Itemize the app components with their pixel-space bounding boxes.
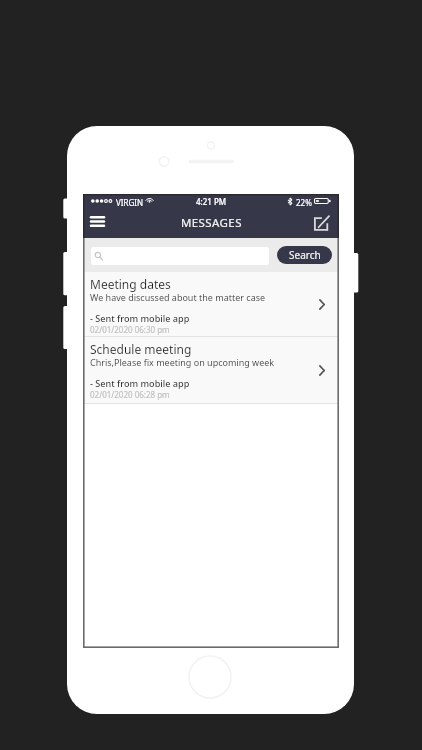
other: Open conversation [313, 337, 339, 403]
staticText: 4:21 PM [196, 196, 227, 207]
staticText: We have discussed about the matter case [90, 291, 266, 303]
button[interactable]: Compose new message [307, 208, 338, 238]
staticText: Chris,Please fix meeting on upcoming wee… [90, 356, 275, 368]
staticText: 02/01/2020 06:30 pm [90, 324, 170, 335]
staticText: VIRGIN [116, 197, 144, 208]
button[interactable]: Search field [91, 247, 269, 265]
button[interactable]: Schedule meeting [83, 337, 339, 404]
staticText: - Sent from mobile app [90, 312, 190, 324]
staticText: Schedule meeting [90, 341, 192, 357]
staticText: - Sent from mobile app [90, 377, 190, 389]
staticText: MESSAGES [181, 215, 242, 231]
button[interactable]: Search [277, 246, 332, 264]
staticText: Search [289, 248, 321, 262]
staticText: 22% [296, 197, 312, 208]
staticText: Meeting dates [90, 276, 171, 292]
other: Open conversation [313, 272, 339, 336]
button[interactable]: Open navigation menu [83, 208, 111, 238]
staticText: 02/01/2020 06:28 pm [90, 389, 170, 400]
button[interactable]: Meeting dates [83, 272, 339, 337]
